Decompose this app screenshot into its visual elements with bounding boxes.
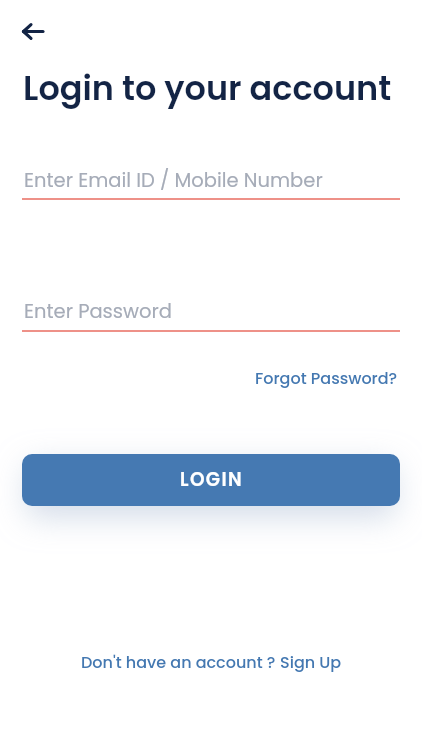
button[interactable]: Forgot Password?: [255, 367, 398, 389]
staticText: LOGIN: [180, 467, 243, 493]
button[interactable]: Sign Up: [280, 651, 342, 673]
button[interactable]: [12, 14, 52, 48]
button[interactable]: Enter Password: [24, 297, 398, 325]
staticText: Enter Password: [24, 298, 172, 325]
button[interactable]: Enter Email ID / Mobile Number: [24, 166, 398, 194]
staticText: Don't have an account ?: [81, 651, 280, 673]
staticText: Enter Email ID / Mobile Number: [24, 167, 323, 194]
staticText: Login to your account: [23, 65, 392, 112]
button[interactable]: LOGIN: [22, 454, 400, 506]
